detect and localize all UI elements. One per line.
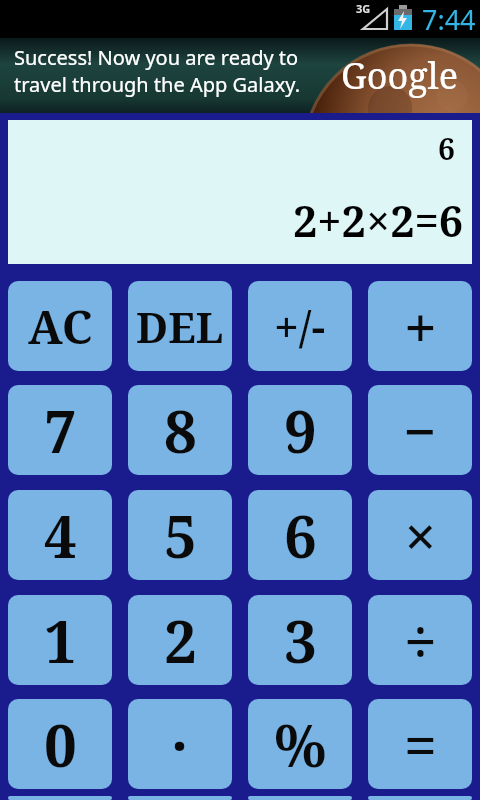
staticText: % <box>274 705 327 784</box>
button[interactable]: = <box>368 699 472 789</box>
staticText: 3G <box>356 1 371 16</box>
staticText: DEL <box>136 298 224 355</box>
button[interactable]: AC <box>8 281 112 371</box>
button[interactable] <box>8 796 112 800</box>
staticText: 2 <box>164 601 197 680</box>
button[interactable]: +/- <box>248 281 352 371</box>
button[interactable]: Success! Now you are ready to <box>0 38 480 113</box>
staticText: 3 <box>284 601 317 680</box>
button[interactable]: 4 <box>8 490 112 580</box>
staticText: = <box>404 705 437 784</box>
button[interactable]: ÷ <box>368 595 472 685</box>
staticText: · <box>171 705 189 784</box>
staticText: − <box>403 391 437 470</box>
staticText: 7 <box>44 391 77 470</box>
button[interactable]: 8 <box>128 385 232 475</box>
button[interactable]: · <box>128 699 232 789</box>
button[interactable]: DEL <box>128 281 232 371</box>
staticText: AC <box>28 295 93 358</box>
button[interactable]: 5 <box>128 490 232 580</box>
button[interactable]: 0 <box>8 699 112 789</box>
staticText: + <box>404 287 437 366</box>
button[interactable]: 2 <box>128 595 232 685</box>
staticText: 8 <box>164 391 197 470</box>
staticText: 6 <box>438 128 455 169</box>
staticText: 5 <box>164 496 197 575</box>
staticText: Google <box>341 51 459 100</box>
staticText: × <box>404 496 437 575</box>
staticText: travel through the App Galaxy. <box>14 71 300 98</box>
button[interactable]: 7 <box>8 385 112 475</box>
button[interactable]: × <box>368 490 472 580</box>
button[interactable]: 6 <box>248 490 352 580</box>
staticText: +/- <box>274 296 326 356</box>
staticText: 6 <box>284 496 317 575</box>
button[interactable]: % <box>248 699 352 789</box>
button[interactable]: 9 <box>248 385 352 475</box>
staticText: 7:44 <box>422 1 476 38</box>
button[interactable]: 3 <box>248 595 352 685</box>
staticText: 9 <box>284 391 317 470</box>
staticText: 2+2×2=6 <box>293 191 464 250</box>
staticText: 1 <box>44 601 77 680</box>
staticText: ÷ <box>404 601 437 680</box>
button[interactable] <box>128 796 232 800</box>
button[interactable] <box>248 796 352 800</box>
staticText: 4 <box>44 496 77 575</box>
staticText: 0 <box>44 705 77 784</box>
staticText: Success! Now you are ready to <box>14 44 299 71</box>
button[interactable] <box>368 796 472 800</box>
button[interactable]: − <box>368 385 472 475</box>
button[interactable]: 1 <box>8 595 112 685</box>
button[interactable]: + <box>368 281 472 371</box>
